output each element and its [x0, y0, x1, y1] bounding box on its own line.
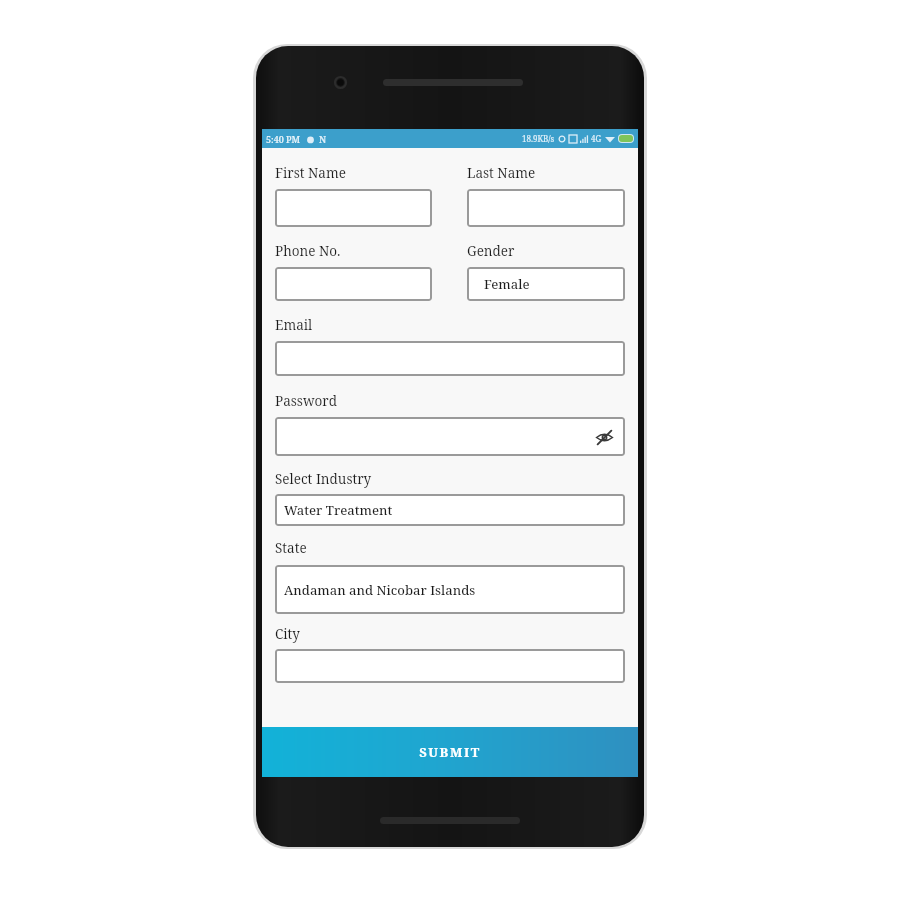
- button[interactable]: [275, 189, 432, 227]
- staticText: Female: [484, 275, 530, 293]
- staticText: 5:40 PM: [266, 133, 301, 145]
- staticText: Last Name: [467, 164, 536, 182]
- staticText: N: [319, 133, 327, 145]
- staticText: Password: [275, 392, 338, 410]
- staticText: City: [275, 625, 300, 643]
- staticText: Gender: [467, 242, 515, 260]
- button[interactable]: Andaman and Nicobar Islands: [275, 565, 625, 614]
- button[interactable]: [275, 341, 625, 376]
- staticText: Select Industry: [275, 470, 372, 488]
- staticText: First Name: [275, 164, 346, 182]
- button[interactable]: Female: [467, 267, 625, 301]
- button[interactable]: [467, 189, 625, 227]
- staticText: Phone No.: [275, 242, 341, 260]
- staticText: 18.9KB/s: [522, 133, 555, 144]
- staticText: State: [275, 539, 307, 557]
- button[interactable]: Show password: [275, 417, 625, 456]
- button[interactable]: [275, 267, 432, 301]
- staticText: 4G: [591, 133, 602, 144]
- button[interactable]: Show password: [593, 426, 615, 448]
- staticText: Andaman and Nicobar Islands: [284, 581, 476, 599]
- button[interactable]: [275, 649, 625, 683]
- staticText: SUBMIT: [419, 743, 481, 761]
- button[interactable]: Water Treatment: [275, 494, 625, 526]
- staticText: Water Treatment: [284, 501, 393, 519]
- button[interactable]: SUBMIT: [262, 727, 638, 777]
- staticText: Email: [275, 316, 313, 334]
